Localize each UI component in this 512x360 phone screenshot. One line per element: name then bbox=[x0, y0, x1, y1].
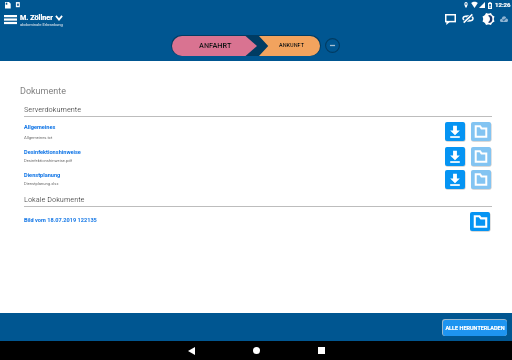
button[interactable]: Open Dienstplanung folder bbox=[471, 170, 491, 189]
button[interactable]: Dienstplanung bbox=[24, 172, 61, 179]
button[interactable]: Open Desinfektionshinweise folder bbox=[471, 147, 491, 166]
button[interactable]: M. Zöllner bbox=[20, 13, 63, 21]
button[interactable]: Home bbox=[232, 341, 280, 360]
staticText: ANKUNFT bbox=[279, 42, 305, 48]
button[interactable]: Messages bbox=[440, 11, 460, 28]
button[interactable]: Download Desinfektionshinweise bbox=[445, 147, 465, 166]
button[interactable]: Sync status bbox=[495, 11, 512, 28]
button[interactable]: Download Dienstplanung bbox=[445, 170, 465, 189]
button[interactable]: ALLE HERUNTERLADEN bbox=[442, 319, 507, 336]
button[interactable]: Desinfektionshinweise bbox=[24, 149, 81, 156]
button[interactable]: Back bbox=[167, 341, 215, 360]
staticText: Dienstplanung bbox=[24, 172, 61, 179]
button[interactable]: Bild vom 18.07.2019 122135 bbox=[24, 217, 97, 224]
staticText: Dienstplanung.xlsx bbox=[24, 181, 59, 186]
button[interactable]: Open Allgemeines folder bbox=[471, 122, 491, 141]
staticText: Serverdokumente bbox=[24, 105, 82, 114]
staticText: M. Zöllner bbox=[20, 13, 53, 21]
staticText: Allgemeines bbox=[24, 124, 56, 131]
button[interactable]: ANKUNFT bbox=[259, 36, 320, 56]
staticText: abdominale Erkrankung bbox=[20, 22, 63, 27]
button[interactable]: Download Allgemeines bbox=[445, 122, 465, 141]
staticText: ALLE HERUNTERLADEN bbox=[445, 325, 505, 331]
staticText: ANFAHRT bbox=[199, 41, 232, 50]
button[interactable]: Recent apps bbox=[297, 341, 345, 360]
button[interactable]: ANFAHRT bbox=[172, 36, 257, 56]
staticText: Lokale Dokumente bbox=[24, 195, 85, 204]
button[interactable]: Hide patient details bbox=[458, 11, 478, 28]
button[interactable]: More steps bbox=[325, 38, 340, 53]
staticText: Allgemeines.txt bbox=[24, 135, 53, 140]
button[interactable]: Brightness bbox=[478, 10, 497, 28]
staticText: Desinfektionshinweise.pdf bbox=[24, 158, 73, 163]
staticText: 12:26 bbox=[495, 1, 511, 8]
staticText: Bild vom 18.07.2019 122135 bbox=[24, 217, 97, 224]
button[interactable]: Open Bild vom 18.07.2019 122135 folder bbox=[470, 212, 490, 231]
staticText: Dokumente bbox=[20, 86, 66, 97]
button[interactable]: Open navigation menu bbox=[0, 11, 20, 28]
staticText: Desinfektionshinweise bbox=[24, 149, 81, 156]
button[interactable]: Allgemeines bbox=[24, 124, 56, 131]
